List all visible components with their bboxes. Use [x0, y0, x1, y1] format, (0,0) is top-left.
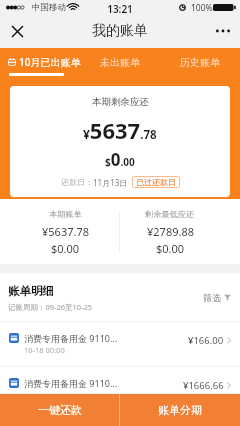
staticText: 已过还款日 [136, 177, 176, 187]
staticText: 11月13日 [93, 177, 128, 188]
button[interactable]: Close [6, 20, 28, 42]
staticText: 账单分期 [158, 403, 202, 417]
staticText: 中国移动 [32, 2, 66, 13]
staticText: ¥1666.66 [183, 379, 224, 392]
staticText: ¥166.00 [188, 334, 224, 347]
button[interactable]: 消费专用备用金 9110... [0, 367, 240, 394]
staticText: 消费专用备用金 9110... [24, 332, 118, 344]
staticText: 我的账单 [92, 22, 148, 40]
staticText: 账单明细 [8, 284, 54, 298]
staticText: 剩余最低应还 [145, 209, 195, 219]
staticText: 消费专用备用金 9110... [24, 377, 118, 389]
staticText: 10-18 00:00 [24, 345, 65, 355]
staticText: 13:21 [0, 2, 240, 16]
button[interactable]: 一键还款 [0, 394, 119, 426]
staticText: 本期剩余应还 [92, 96, 149, 108]
staticText: 未出账单 [100, 56, 140, 69]
staticText: 还款日： [61, 177, 93, 187]
staticText: 筛选 [203, 292, 221, 303]
button[interactable]: More options [212, 20, 234, 42]
staticText: $0.00 [51, 241, 80, 256]
staticText: 历史账单 [180, 56, 220, 69]
staticText: ¥2789.88 [147, 224, 194, 239]
button[interactable]: 筛选 [203, 292, 231, 303]
button[interactable]: 历史账单 [160, 48, 240, 76]
staticText: 本期账单 [49, 209, 82, 219]
staticText: 10月已出账单 [19, 55, 81, 69]
button[interactable]: 未出账单 [80, 48, 160, 76]
staticText: 一键还款 [38, 403, 82, 417]
staticText: $0.00 [156, 241, 185, 256]
staticText: ¥5637.78 [83, 115, 157, 145]
staticText: $0.00 [105, 148, 135, 171]
staticText: 100% [191, 2, 213, 14]
staticText: 记账周期：09-26至10-25 [8, 302, 93, 312]
staticText: ¥5637.78 [42, 224, 89, 239]
button[interactable]: 消费专用备用金 9110... [0, 322, 240, 367]
button[interactable]: 10月已出账单 [0, 48, 80, 76]
button[interactable]: 账单分期 [120, 394, 240, 426]
